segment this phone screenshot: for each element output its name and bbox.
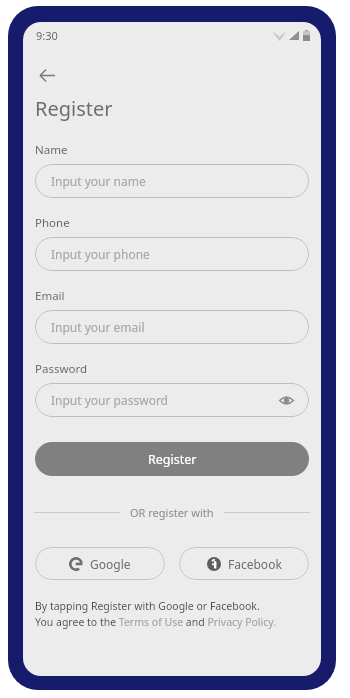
staticText: Register: [148, 451, 197, 468]
button[interactable]: Google: [35, 547, 165, 580]
button[interactable]: Input your email: [35, 310, 309, 344]
button[interactable]: Show password: [277, 391, 295, 409]
staticText: By tapping Register with Google or Faceb…: [35, 599, 260, 613]
staticText: Email: [35, 288, 65, 304]
staticText: Facebook: [228, 556, 282, 572]
staticText: OR register with: [130, 505, 214, 520]
staticText: Password: [35, 361, 88, 377]
staticText: Input your email: [51, 319, 145, 335]
staticText: Input your phone: [51, 246, 150, 262]
staticText: Register: [35, 95, 113, 122]
staticText: 9:30: [36, 28, 58, 43]
staticText: Name: [35, 142, 68, 158]
button[interactable]: Back: [29, 57, 65, 93]
staticText: You agree to the Terms of Use and Privac…: [35, 615, 277, 629]
staticText: Google: [90, 556, 131, 572]
button[interactable]: Register: [35, 442, 309, 476]
button[interactable]: Facebook: [179, 547, 309, 580]
button[interactable]: Input your name: [35, 164, 309, 198]
button[interactable]: Input your phone: [35, 237, 309, 271]
staticText: Input your name: [51, 173, 146, 189]
staticText: Input your password: [51, 392, 169, 408]
button[interactable]: Input your password: [35, 383, 309, 417]
staticText: Phone: [35, 215, 70, 231]
